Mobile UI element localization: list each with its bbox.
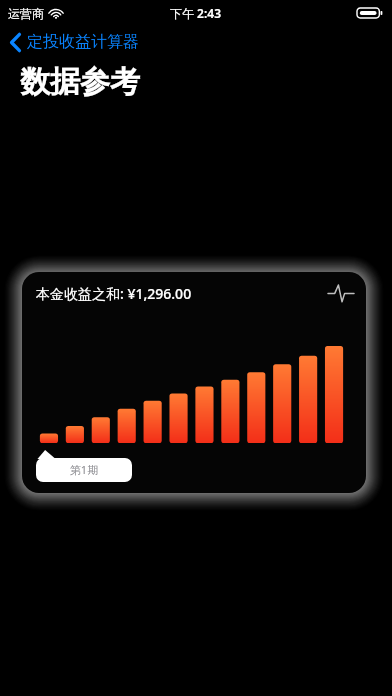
staticText: 运营商 xyxy=(8,6,44,21)
staticText: 下午 2:43 xyxy=(170,5,222,21)
other: Chart activity xyxy=(328,283,354,303)
staticText: 定投收益计算器 xyxy=(27,32,139,52)
staticText: 第1期 xyxy=(36,462,132,477)
staticText: 本金收益之和: ¥1,296.00 xyxy=(36,284,192,303)
button[interactable]: 定投收益计算器 xyxy=(0,28,149,56)
button[interactable]: 本金收益之和: ¥1,296.00 xyxy=(22,272,366,493)
staticText: 数据参考 xyxy=(20,63,140,101)
